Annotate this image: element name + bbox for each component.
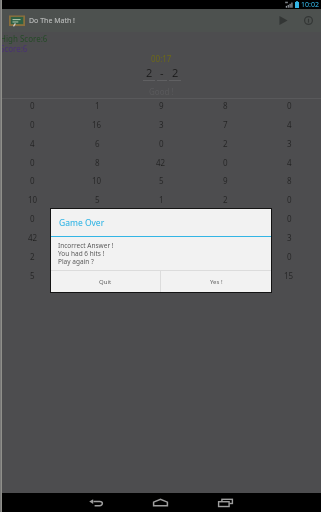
staticText: 9 <box>95 213 100 224</box>
staticText: Do The Math ! <box>29 16 75 26</box>
staticText: 0 <box>30 100 35 111</box>
staticText: 1 <box>223 232 228 243</box>
staticText: 42 <box>156 157 166 168</box>
staticText: Yes ! <box>210 278 223 286</box>
staticText: 0 <box>30 175 35 186</box>
staticText: 10:02 <box>301 0 319 9</box>
button[interactable]: Yes ! <box>161 271 271 292</box>
staticText: 2 <box>146 65 153 80</box>
staticText: 4 <box>287 157 292 168</box>
staticText: Play again ? <box>58 257 94 266</box>
staticText: 9 <box>159 100 164 111</box>
staticText: 4 <box>287 119 292 130</box>
staticText: 0 <box>30 157 35 168</box>
staticText: Quit <box>99 278 112 286</box>
staticText: Score:6 <box>0 43 28 54</box>
staticText: Game Over <box>59 217 105 229</box>
staticText: 3 <box>95 251 100 262</box>
staticText: 1 <box>159 194 164 205</box>
staticText: 2 <box>172 65 179 80</box>
staticText: 0 <box>287 194 292 205</box>
staticText: High Score:6 <box>0 33 48 44</box>
button[interactable]: Quit <box>51 271 160 292</box>
staticText: 0 <box>159 138 164 149</box>
staticText: - <box>160 65 164 80</box>
staticText: 10 <box>92 175 102 186</box>
staticText: You had 6 hits ! <box>58 249 105 258</box>
staticText: 2 <box>223 138 228 149</box>
staticText: 00:17 <box>151 53 172 64</box>
staticText: 8 <box>95 157 100 168</box>
staticText: 2 <box>223 194 228 205</box>
staticText: 1 <box>95 100 100 111</box>
staticText: 0 <box>287 251 292 262</box>
button[interactable]: Back <box>72 493 120 512</box>
staticText: 6 <box>159 232 164 243</box>
staticText: 6 <box>95 138 100 149</box>
staticText: 10 <box>28 194 38 205</box>
button[interactable]: Info <box>296 9 321 32</box>
staticText: 7 <box>223 119 228 130</box>
button[interactable]: Recents <box>201 493 249 512</box>
staticText: 12 <box>92 270 102 281</box>
staticText: 5 <box>159 175 164 186</box>
staticText: 3 <box>287 232 292 243</box>
staticText: 0 <box>223 157 228 168</box>
staticText: 9 <box>223 175 228 186</box>
staticText: 4 <box>223 270 228 281</box>
staticText: 5 <box>95 194 100 205</box>
staticText: 8 <box>287 175 292 186</box>
staticText: Incorrect Answer ! <box>58 241 114 250</box>
staticText: 0 <box>287 213 292 224</box>
button[interactable]: Home <box>136 493 184 512</box>
staticText: 42 <box>28 232 38 243</box>
staticText: 7 <box>95 232 100 243</box>
staticText: 2 <box>30 251 35 262</box>
staticText: 5 <box>30 270 35 281</box>
staticText: Good ! <box>149 86 174 97</box>
staticText: 0 <box>30 213 35 224</box>
button[interactable]: Play <box>271 9 296 32</box>
staticText: 8 <box>223 100 228 111</box>
staticText: 4 <box>30 138 35 149</box>
staticText: 3 <box>287 138 292 149</box>
staticText: 2 <box>159 270 164 281</box>
staticText: 15 <box>284 270 294 281</box>
staticText: 16 <box>92 119 102 130</box>
staticText: 0 <box>30 119 35 130</box>
staticText: 0 <box>287 100 292 111</box>
staticText: 3 <box>159 119 164 130</box>
